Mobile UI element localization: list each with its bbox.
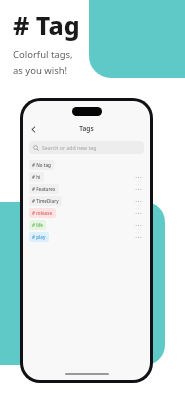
button[interactable]: More options for # Features	[132, 183, 144, 195]
button[interactable]: More options for # life	[132, 219, 144, 231]
staticText: # life	[32, 222, 43, 228]
staticText: Colorful tags,	[13, 48, 73, 61]
button[interactable]: # No tag	[23, 159, 150, 171]
staticText: # Features	[32, 186, 56, 192]
button[interactable]: More options for # play	[132, 231, 144, 243]
staticText: as you wish!	[13, 64, 68, 77]
button[interactable]: # life	[23, 219, 150, 231]
staticText: # release	[32, 210, 53, 216]
staticText: # TimeDiary	[32, 198, 59, 204]
button[interactable]: Back	[26, 122, 40, 136]
staticText: # hi	[32, 174, 41, 180]
button[interactable]: More options for # TimeDiary	[132, 195, 144, 207]
button[interactable]: # TimeDiary	[23, 195, 150, 207]
button[interactable]: # hi	[23, 171, 150, 183]
button[interactable]: More options for # hi	[132, 171, 144, 183]
button[interactable]: # release	[23, 207, 150, 219]
staticText: Search or add new tag	[42, 144, 97, 151]
staticText: # Tag	[13, 8, 80, 42]
button[interactable]: More options for # release	[132, 207, 144, 219]
button[interactable]: # Features	[23, 183, 150, 195]
staticText: # No tag	[32, 162, 51, 168]
staticText: # play	[32, 234, 46, 240]
button[interactable]: # play	[23, 231, 150, 243]
staticText: Tags	[79, 124, 94, 133]
button[interactable]: Search or add new tag	[29, 141, 144, 154]
